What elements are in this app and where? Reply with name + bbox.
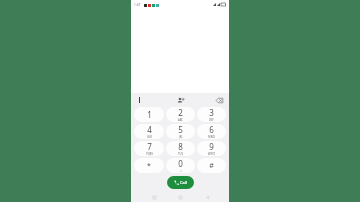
staticText: DEF — [209, 118, 214, 122]
button[interactable]: * — [134, 158, 164, 173]
staticText: 6 — [209, 124, 214, 135]
staticText: TUV — [178, 152, 183, 156]
staticText: Call — [180, 180, 187, 185]
staticText: 1:47 — [134, 3, 141, 7]
button[interactable]: 1 — [134, 107, 164, 122]
staticText: WXYZ — [208, 152, 215, 156]
button[interactable]: Recents — [150, 193, 158, 201]
staticText: JKL — [179, 135, 183, 139]
button[interactable]: Call — [167, 176, 194, 189]
button[interactable]: Backspace — [213, 94, 225, 106]
staticText: MNO — [208, 135, 215, 139]
button[interactable]: Add contact — [173, 93, 187, 107]
staticText: 7 — [147, 141, 152, 152]
button[interactable]: 2 — [166, 107, 195, 122]
staticText: 0 — [178, 158, 183, 169]
staticText: 4 — [147, 124, 152, 135]
staticText: 8 — [178, 141, 183, 152]
staticText: 2 — [178, 107, 183, 118]
staticText: GHI — [147, 135, 152, 139]
staticText: 5 — [178, 124, 183, 135]
staticText: PQRS — [146, 152, 153, 156]
button[interactable]: Back — [203, 193, 211, 201]
button[interactable]: 5 — [166, 124, 195, 139]
button[interactable]: Home — [176, 193, 184, 201]
button[interactable]: 4 — [134, 124, 164, 139]
button[interactable]: # — [197, 158, 226, 173]
staticText: + — [180, 169, 182, 173]
staticText: 3 — [209, 107, 214, 118]
button[interactable]: 0 — [166, 158, 195, 173]
button[interactable]: 7 — [134, 141, 164, 156]
staticText: # — [209, 161, 214, 171]
button[interactable]: 8 — [166, 141, 195, 156]
staticText: * — [147, 161, 151, 171]
staticText: 9 — [209, 141, 214, 152]
button[interactable]: 9 — [197, 141, 226, 156]
staticText: 1 — [147, 109, 152, 120]
staticText: ABC — [178, 118, 183, 122]
button[interactable]: 6 — [197, 124, 226, 139]
button[interactable]: 3 — [197, 107, 226, 122]
